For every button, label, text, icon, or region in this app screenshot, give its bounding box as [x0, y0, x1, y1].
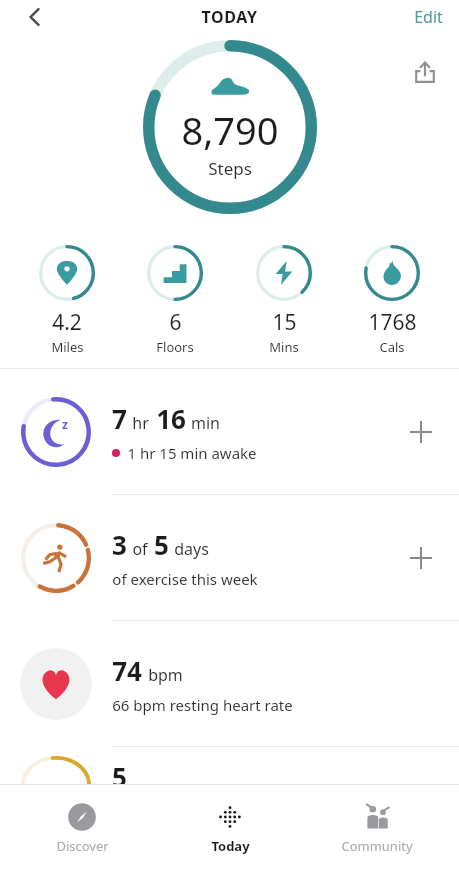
button[interactable]: 4.2	[19, 242, 115, 358]
staticText: 8,790	[181, 104, 279, 156]
staticText: Steps	[208, 157, 252, 180]
button[interactable]: Discover	[17, 796, 147, 861]
staticText: 1 hr 15 min awake	[127, 443, 257, 463]
staticText: Community	[341, 837, 413, 855]
button[interactable]: Today	[165, 796, 295, 861]
staticText: 4.2	[52, 308, 82, 337]
button[interactable]: 1768	[344, 242, 440, 358]
staticText: 3	[112, 527, 127, 562]
staticText: 7	[112, 401, 127, 436]
staticText: Edit	[414, 6, 443, 28]
button[interactable]: 15	[236, 242, 332, 358]
staticText: bpm	[148, 664, 183, 686]
staticText: min	[191, 412, 220, 434]
staticText: 16	[156, 401, 186, 436]
button[interactable]: 3	[0, 495, 459, 620]
button[interactable]: z	[0, 369, 459, 494]
button[interactable]: Community	[312, 796, 442, 861]
staticText: 5	[112, 759, 127, 794]
staticText: days	[174, 538, 209, 560]
button[interactable]: 74	[0, 621, 459, 746]
staticText: Today	[211, 837, 250, 855]
staticText: Cals	[379, 338, 405, 356]
staticText: 15	[272, 308, 297, 337]
staticText: Miles	[51, 338, 84, 356]
staticText: 74	[112, 653, 142, 688]
staticText: hr	[132, 412, 149, 434]
staticText: 5	[154, 527, 169, 562]
staticText: z	[62, 416, 68, 432]
staticText: TODAY	[201, 6, 258, 28]
staticText: 1768	[368, 308, 417, 337]
staticText: of exercise this week	[112, 569, 258, 589]
staticText: of	[132, 538, 148, 560]
button[interactable]: Edit	[408, 2, 449, 32]
button[interactable]: Add	[383, 394, 459, 470]
button[interactable]: Back	[18, 0, 52, 34]
staticText: 66 bpm resting heart rate	[112, 695, 293, 715]
staticText: 6	[169, 308, 182, 337]
staticText: Floors	[156, 338, 194, 356]
button[interactable]: 6	[127, 242, 223, 358]
button[interactable]: 8,790	[141, 38, 319, 216]
button[interactable]: Add	[383, 520, 459, 596]
button[interactable]: 5	[0, 747, 459, 807]
button[interactable]: Share	[405, 52, 445, 92]
staticText: Discover	[56, 837, 109, 855]
staticText: Mins	[269, 338, 299, 356]
